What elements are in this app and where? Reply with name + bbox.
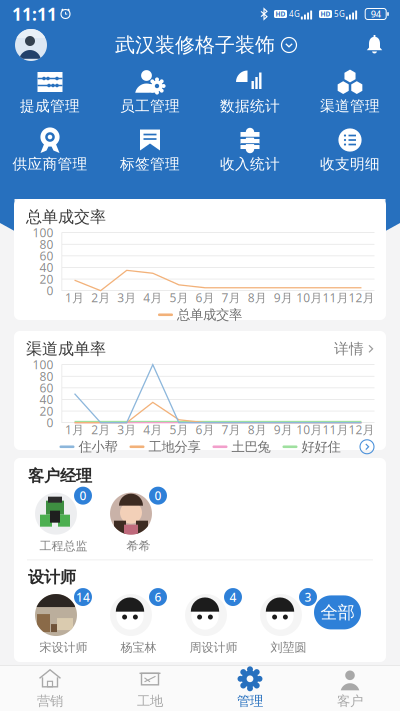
staticText: 4 — [229, 589, 236, 605]
staticText: 80 — [39, 368, 53, 384]
button[interactable]: 6 — [101, 588, 176, 655]
staticText: 收支明细 — [320, 155, 380, 173]
button[interactable]: 14 — [26, 588, 101, 655]
staticText: 希希 — [126, 539, 150, 553]
staticText: 工程总监 — [39, 539, 87, 553]
staticText: 武汉装修格子装饰 — [115, 33, 275, 57]
staticText: 客户经理 — [28, 466, 92, 486]
staticText: 10月 — [296, 422, 322, 438]
button[interactable]: 员工管理 — [100, 68, 200, 115]
staticText: 0 — [46, 283, 53, 299]
staticText: 20 — [39, 271, 53, 287]
staticText: 8月 — [248, 290, 267, 306]
staticText: 4G — [289, 9, 300, 19]
button[interactable]: 全部 — [314, 595, 361, 629]
button[interactable]: 武汉装修格子装饰 — [115, 33, 297, 57]
staticText: 11:11 — [12, 2, 57, 25]
staticText: 40 — [39, 391, 53, 407]
button[interactable]: 收支明细 — [300, 126, 400, 173]
button[interactable]: Notifications — [365, 35, 384, 55]
staticText: 60 — [39, 248, 53, 264]
staticText: 供应商管理 — [12, 155, 87, 173]
staticText: 8月 — [248, 422, 267, 438]
staticText: 土巴兔 — [231, 439, 270, 455]
button[interactable]: 0 — [26, 487, 101, 553]
staticText: 员工管理 — [120, 97, 180, 115]
staticText: 3月 — [117, 422, 136, 438]
staticText: 11月 — [322, 422, 348, 438]
staticText: 刘堃圆 — [270, 640, 306, 655]
staticText: 14 — [76, 589, 90, 605]
staticText: 12月 — [348, 422, 374, 438]
staticText: 1月 — [65, 290, 84, 306]
button[interactable]: 营销 — [0, 662, 100, 711]
staticText: 设计师 — [28, 567, 76, 587]
staticText: 11月 — [322, 290, 348, 306]
button[interactable]: 提成管理 — [0, 68, 100, 115]
staticText: 100 — [32, 357, 53, 373]
staticText: 7月 — [221, 422, 240, 438]
staticText: 全部 — [320, 602, 354, 623]
staticText: 80 — [39, 236, 53, 252]
button[interactable]: 4 — [176, 588, 251, 655]
staticText: 100 — [32, 225, 53, 241]
button[interactable]: 管理 — [200, 662, 300, 711]
button[interactable]: 客户 — [300, 662, 400, 711]
staticText: 营销 — [37, 693, 63, 709]
staticText: 渠道管理 — [320, 97, 380, 115]
staticText: 5G — [334, 9, 345, 19]
staticText: 6月 — [195, 422, 214, 438]
button[interactable]: 3 — [251, 588, 326, 655]
staticText: 6 — [154, 589, 161, 605]
staticText: 0 — [154, 488, 161, 504]
staticText: 详情 — [334, 340, 364, 358]
staticText: 好好住 — [301, 439, 340, 455]
staticText: 0 — [46, 415, 53, 431]
button[interactable]: Profile — [15, 29, 47, 61]
staticText: 6月 — [195, 290, 214, 306]
staticText: 1月 — [65, 422, 84, 438]
staticText: 40 — [39, 259, 53, 275]
staticText: 工地分享 — [148, 439, 200, 455]
staticText: 总单成交率 — [26, 207, 106, 227]
button[interactable]: 供应商管理 — [0, 126, 100, 173]
staticText: 94 — [371, 8, 381, 20]
button[interactable]: 0 — [101, 487, 176, 553]
button[interactable]: 数据统计 — [200, 68, 300, 115]
staticText: 渠道成单率 — [26, 339, 106, 359]
button[interactable]: 标签管理 — [100, 126, 200, 173]
staticText: 管理 — [237, 693, 263, 709]
staticText: 0 — [79, 488, 86, 504]
staticText: 60 — [39, 380, 53, 396]
button[interactable]: 渠道管理 — [300, 68, 400, 115]
staticText: 工地 — [137, 693, 163, 709]
staticText: 宋设计师 — [39, 640, 87, 655]
staticText: 20 — [39, 403, 53, 419]
staticText: 2月 — [91, 422, 110, 438]
staticText: 住小帮 — [78, 439, 117, 455]
staticText: 收入统计 — [220, 155, 280, 173]
staticText: 标签管理 — [120, 155, 180, 173]
button[interactable]: 详情 — [334, 340, 374, 358]
staticText: 9月 — [274, 290, 293, 306]
staticText: 3月 — [117, 290, 136, 306]
button[interactable]: 工地 — [100, 662, 200, 711]
staticText: 2月 — [91, 290, 110, 306]
button[interactable]: 收入统计 — [200, 126, 300, 173]
button[interactable]: Next — [360, 440, 374, 454]
staticText: HD — [320, 10, 330, 18]
staticText: HD — [275, 10, 285, 18]
staticText: 12月 — [348, 290, 374, 306]
staticText: 10月 — [296, 290, 322, 306]
staticText: 3 — [304, 589, 311, 605]
staticText: 9月 — [274, 422, 293, 438]
staticText: 提成管理 — [20, 97, 80, 115]
staticText: 5月 — [169, 290, 188, 306]
staticText: 数据统计 — [220, 97, 280, 115]
staticText: 4月 — [143, 422, 162, 438]
staticText: 7月 — [221, 290, 240, 306]
staticText: 5月 — [169, 422, 188, 438]
staticText: 杨宝林 — [120, 640, 156, 655]
staticText: 4月 — [143, 290, 162, 306]
staticText: 客户 — [337, 693, 363, 709]
